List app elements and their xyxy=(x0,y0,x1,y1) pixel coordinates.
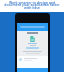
other: Document xyxy=(30,36,35,42)
button[interactable] xyxy=(26,47,39,49)
button[interactable] xyxy=(17,23,48,31)
staticText: Work smarter to design and document your… xyxy=(1,0,63,10)
button[interactable] xyxy=(19,57,46,62)
